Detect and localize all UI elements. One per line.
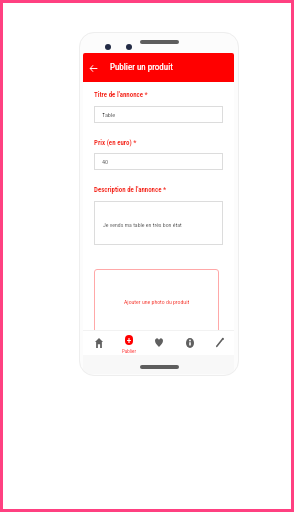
staticText: Publier bbox=[122, 348, 136, 354]
button[interactable]: Ajouter une photo du produit bbox=[94, 269, 219, 330]
button[interactable]: Je vends ma table en très bon état bbox=[94, 201, 223, 245]
button[interactable]: Back bbox=[86, 61, 100, 75]
staticText: Titre de l'annonce * bbox=[94, 91, 148, 99]
staticText: Table bbox=[102, 111, 116, 118]
staticText: 40 bbox=[102, 158, 109, 165]
staticText: Prix (en euro) * bbox=[94, 139, 137, 147]
button[interactable]: Table bbox=[94, 106, 223, 123]
staticText: Description de l'annonce * bbox=[94, 186, 167, 194]
button[interactable]: Edit bbox=[208, 330, 232, 355]
staticText: Publier un produit bbox=[110, 62, 173, 73]
button[interactable]: Publier bbox=[116, 330, 142, 355]
button[interactable]: Info bbox=[178, 330, 202, 355]
button[interactable]: Favorites bbox=[147, 330, 171, 355]
button[interactable]: Home bbox=[87, 330, 111, 355]
button[interactable]: 40 bbox=[94, 153, 223, 170]
button[interactable]: Back bbox=[83, 53, 234, 82]
staticText: Ajouter une photo du produit bbox=[124, 299, 190, 306]
staticText: Je vends ma table en très bon état bbox=[103, 222, 182, 229]
